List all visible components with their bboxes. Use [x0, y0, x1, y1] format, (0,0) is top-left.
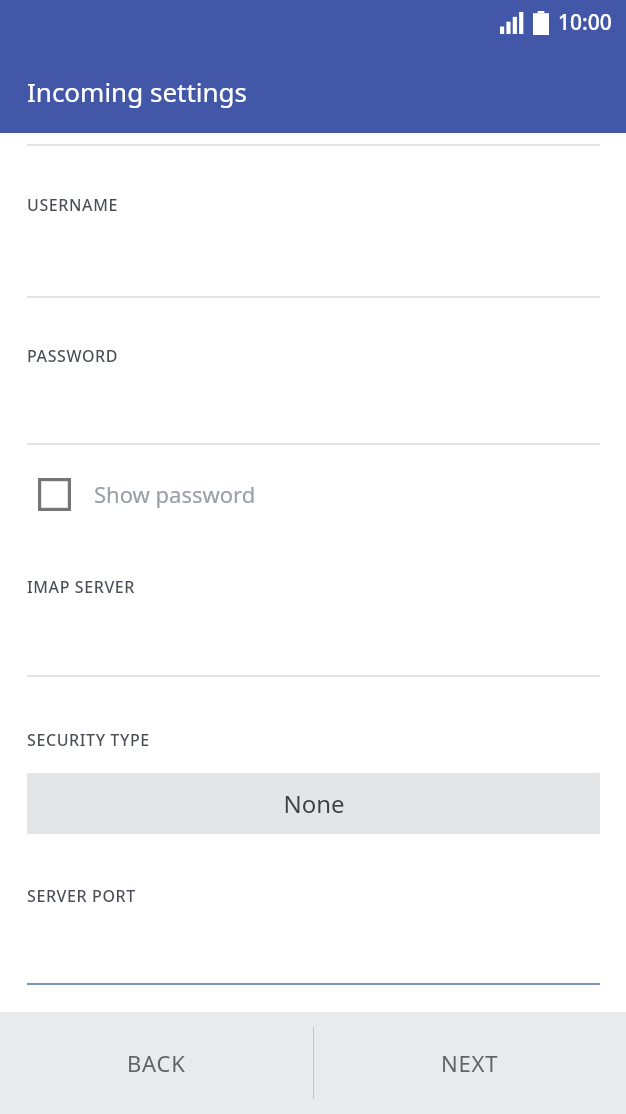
staticText: NEXT — [441, 1048, 499, 1078]
button[interactable]: IMAP SERVER — [0, 543, 626, 675]
button[interactable]: PASSWORD — [0, 298, 626, 443]
staticText: SERVER PORT — [27, 885, 136, 907]
button[interactable]: BACK — [0, 1012, 313, 1114]
button[interactable]: None — [27, 773, 600, 834]
staticText: Incoming settings — [27, 74, 248, 109]
staticText: None — [283, 787, 345, 820]
staticText: BACK — [127, 1048, 186, 1078]
button[interactable]: SERVER PORT — [0, 861, 626, 983]
button[interactable]: NEXT — [313, 1012, 626, 1114]
staticText: 10:00 — [558, 8, 612, 37]
button[interactable]: Show password — [0, 445, 626, 543]
staticText: SECURITY TYPE — [27, 729, 150, 751]
staticText: USERNAME — [27, 194, 118, 216]
staticText: PASSWORD — [27, 345, 119, 367]
button[interactable]: USERNAME — [0, 146, 626, 296]
staticText: IMAP SERVER — [27, 576, 136, 598]
staticText: Show password — [94, 479, 256, 509]
